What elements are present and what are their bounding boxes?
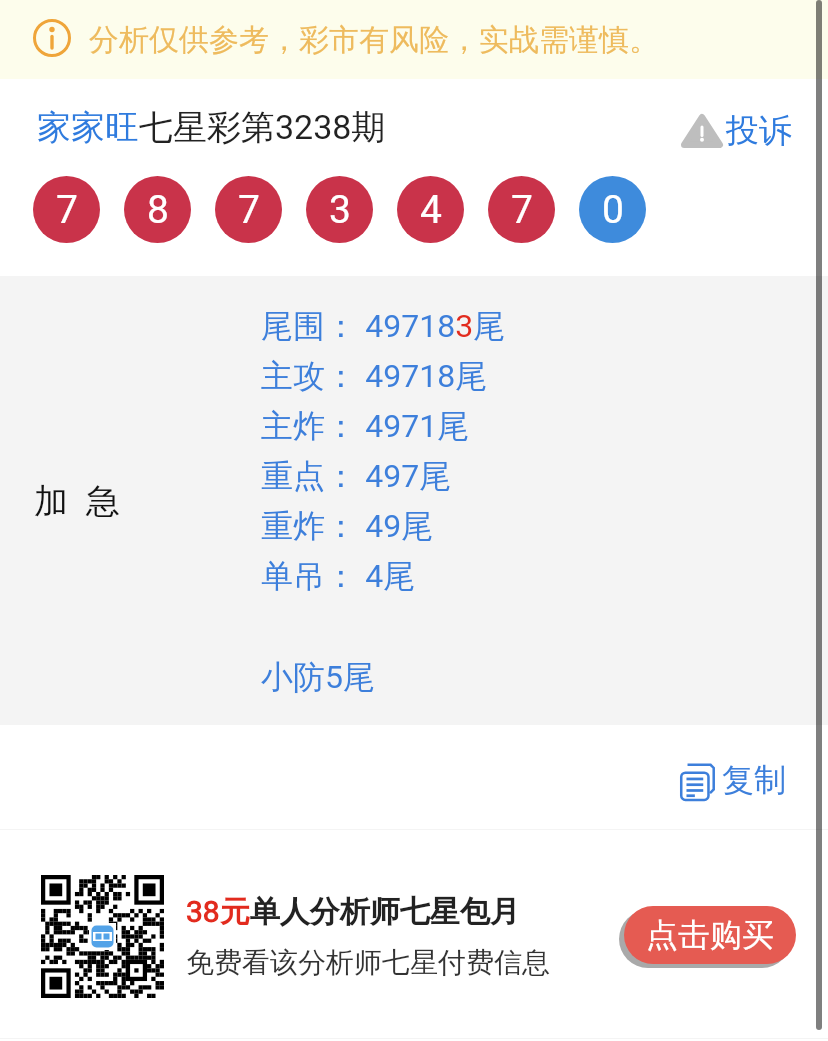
button[interactable]: 复制 [670,752,792,808]
staticText: 投诉 [726,110,792,152]
staticText: 7 [238,187,260,233]
staticText: 单吊： 4尾 [261,553,416,597]
button[interactable]: 号码 0 [579,176,646,243]
staticText: 38元单人分析师七星包月 [186,893,520,931]
staticText: 7 [511,187,533,233]
staticText: 3 [329,187,351,233]
staticText: 尾围： 497183尾 [261,303,506,347]
staticText: 复制 [722,760,786,800]
staticText: 重点： 497尾 [261,453,452,497]
staticText: 主攻： 49718尾 [261,353,488,397]
staticText: 重炸： 49尾 [261,503,434,547]
button[interactable]: 号码 7 [215,176,282,243]
staticText: 分析仅供参考，彩市有风险，实战需谨慎。 [89,21,659,59]
staticText: 8 [147,187,169,233]
staticText: 主炸： 4971尾 [261,403,470,447]
staticText: 0 [602,187,624,233]
staticText: 加 急 [34,477,120,523]
button[interactable]: 号码 8 [124,176,191,243]
button[interactable]: 号码 7 [33,176,100,243]
staticText: 4 [420,187,442,233]
button[interactable]: 投诉 [675,106,798,156]
staticText: 7 [56,187,78,233]
staticText: 免费看该分析师七星付费信息 [186,945,550,980]
staticText: 小防5尾 [261,657,375,697]
staticText: 点击购买 [646,915,774,955]
button[interactable]: 点击购买 [624,906,796,964]
button[interactable]: 号码 4 [397,176,464,243]
button[interactable]: 号码 7 [488,176,555,243]
staticText: 家家旺七星彩第3238期 [37,106,386,149]
button[interactable]: 号码 3 [306,176,373,243]
